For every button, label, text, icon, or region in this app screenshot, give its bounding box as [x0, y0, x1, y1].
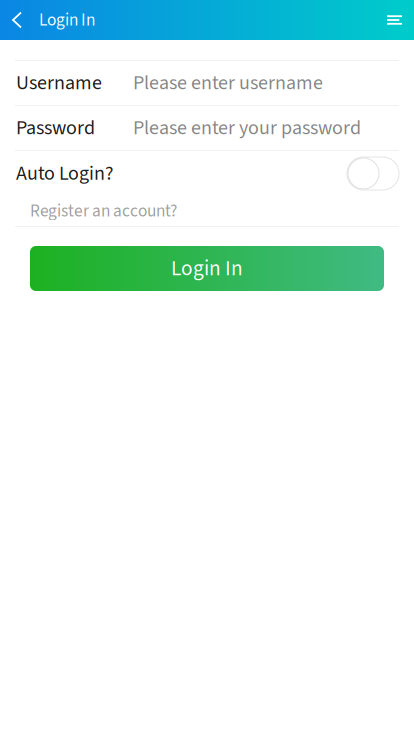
button[interactable]: Auto Login: [347, 157, 399, 190]
staticText: Please enter username: [133, 69, 323, 97]
staticText: Please enter your password: [133, 114, 361, 142]
button[interactable]: Register an account?: [0, 196, 414, 226]
staticText: Auto Login?: [16, 159, 114, 188]
staticText: Login In: [171, 253, 243, 284]
button[interactable]: Menu: [373, 0, 414, 40]
staticText: Username: [16, 69, 102, 97]
button[interactable]: Back: [0, 0, 39, 40]
button[interactable]: Login In: [0, 246, 414, 291]
staticText: Password: [16, 114, 95, 142]
staticText: Register an account?: [30, 199, 177, 223]
staticText: Login In: [39, 8, 95, 32]
